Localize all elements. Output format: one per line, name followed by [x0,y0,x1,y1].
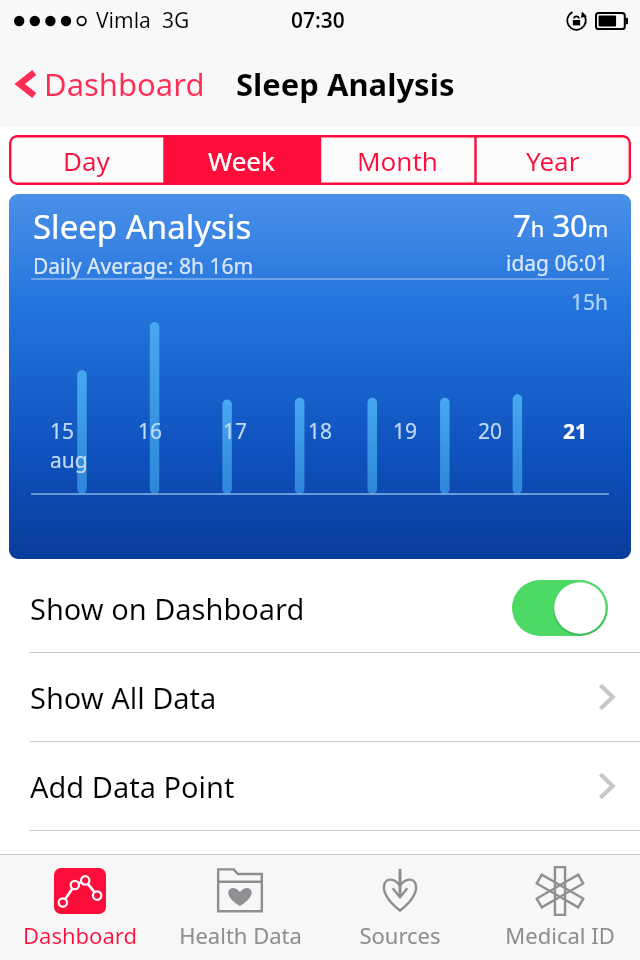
staticText: Show All Data [30,678,217,717]
button[interactable]: Sources [320,855,480,950]
staticText: idag 06:01 [506,249,609,278]
staticText: 15h [571,288,609,317]
staticText: 7h 30m [513,204,609,246]
other: Back [14,66,40,102]
button[interactable]: Show on Dashboard toggle [512,580,608,636]
staticText: Health Data [179,920,302,950]
staticText: Sleep Analysis [33,204,252,249]
staticText: 20 [478,417,503,446]
button[interactable]: Month [319,135,475,185]
button[interactable]: Show on Dashboard [0,564,640,652]
button[interactable]: Back [14,63,205,105]
staticText: 18 [308,417,333,446]
button[interactable]: Health Data [160,855,320,950]
staticText: Daily Average: 8h 16m [33,252,254,281]
staticText: Week [208,143,275,178]
staticText: 19 [393,417,418,446]
staticText: Year [526,143,580,178]
button[interactable]: Week [164,135,319,185]
button[interactable]: Medical ID [480,855,640,950]
button[interactable]: Day [9,135,164,185]
staticText: Dashboard [23,920,137,950]
staticText: Vimla [96,6,151,35]
button[interactable]: Show All Data [0,653,640,741]
button[interactable]: Dashboard [0,855,160,950]
staticText: Sleep Analysis [236,63,455,105]
staticText: Medical ID [505,920,615,950]
staticText: Sources [359,920,441,950]
staticText: 3G [162,6,190,35]
staticText: Month [357,143,438,178]
button[interactable]: Sleep Analysis [9,194,631,559]
staticText: 16 [138,417,163,446]
staticText: Dashboard [44,63,205,105]
staticText: Show on Dashboard [30,589,305,628]
staticText: 15 aug [50,417,107,475]
staticText: 07:30 [291,6,345,35]
button[interactable]: Add Data Point [0,742,640,830]
button[interactable]: Year [475,135,631,185]
staticText: Day [63,143,110,178]
staticText: Add Data Point [30,767,235,806]
staticText: 17 [223,417,248,446]
staticText: 21 [563,417,588,446]
